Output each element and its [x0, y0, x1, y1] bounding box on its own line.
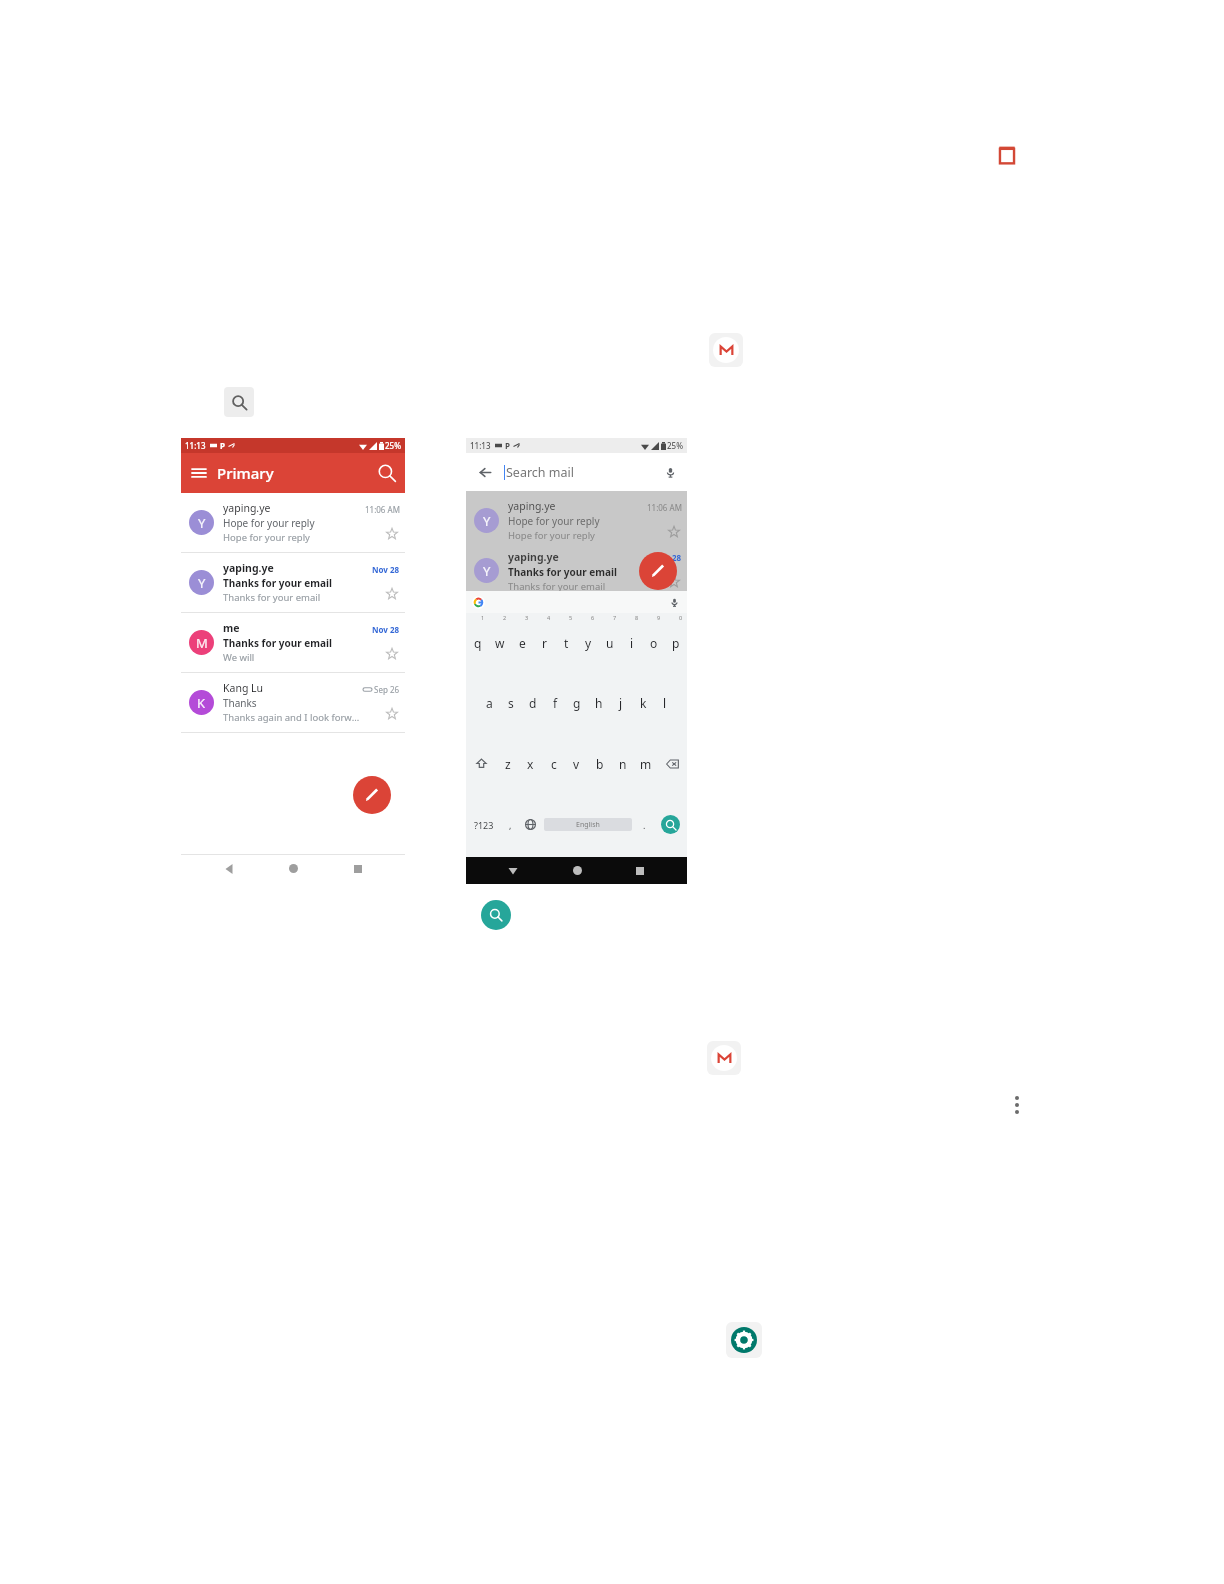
button[interactable]: c — [542, 733, 565, 794]
button[interactable]: Star — [384, 526, 400, 542]
button[interactable]: 4 — [533, 613, 555, 673]
staticText: d — [529, 695, 537, 711]
staticText: ?123 — [474, 819, 494, 831]
staticText: yaping.ye — [508, 550, 559, 564]
staticText: 9 — [657, 614, 661, 621]
button[interactable]: l — [654, 673, 676, 733]
button[interactable]: 5 — [555, 613, 577, 673]
button[interactable]: Y — [466, 550, 687, 591]
button[interactable]: z — [496, 733, 519, 794]
button[interactable]: Compose — [353, 776, 391, 814]
button[interactable]: Star — [384, 646, 400, 662]
button[interactable]: K — [181, 673, 405, 733]
staticText: 11:06 AM — [365, 504, 400, 515]
button[interactable]: Voice input — [667, 595, 681, 609]
button[interactable]: b — [588, 733, 611, 794]
button[interactable]: Back — [496, 857, 530, 884]
button[interactable]: 3 — [511, 613, 533, 673]
button[interactable]: Star — [666, 574, 682, 590]
button[interactable]: Search — [661, 815, 680, 834]
staticText: yaping.ye — [223, 561, 274, 575]
button[interactable]: Change language — [520, 794, 541, 855]
button[interactable]: M — [181, 613, 405, 673]
staticText: 8 — [635, 614, 639, 621]
button[interactable]: v — [565, 733, 588, 794]
staticText: Hope for your reply — [508, 514, 600, 528]
button[interactable]: Star — [666, 524, 682, 540]
button[interactable]: k — [632, 673, 654, 733]
button[interactable]: English — [544, 818, 632, 831]
staticText: Nov 28 — [372, 564, 400, 575]
button[interactable]: Home — [560, 857, 594, 884]
staticText: 5 — [569, 614, 573, 621]
staticText: n — [619, 756, 627, 772]
staticText: Search mail — [506, 464, 574, 481]
button[interactable]: Home — [276, 855, 310, 882]
button[interactable]: d — [522, 673, 544, 733]
button[interactable]: Backspace — [657, 733, 687, 794]
button[interactable]: a — [478, 673, 500, 733]
button[interactable]: Y — [466, 491, 687, 550]
staticText: 1 — [481, 614, 485, 621]
staticText: s — [508, 695, 514, 711]
staticText: P — [505, 440, 510, 451]
button[interactable]: f — [544, 673, 566, 733]
button[interactable]: , — [501, 794, 520, 855]
button[interactable]: ?123 — [466, 794, 501, 855]
button[interactable]: Recents — [623, 857, 657, 884]
button[interactable]: Open navigation drawer — [181, 453, 217, 493]
staticText: Hope for your reply — [223, 531, 310, 544]
button[interactable]: m — [634, 733, 657, 794]
staticText: Y — [483, 512, 491, 530]
staticText: yaping.ye — [508, 499, 556, 513]
button[interactable]: Google — [472, 596, 485, 609]
button[interactable]: Recents — [341, 855, 375, 882]
button[interactable]: Y — [181, 493, 405, 553]
staticText: a — [486, 695, 493, 711]
button[interactable]: . — [635, 794, 654, 855]
staticText: Thanks for your email — [223, 591, 321, 604]
button[interactable]: Shift — [466, 733, 496, 794]
button[interactable]: g — [566, 673, 588, 733]
staticText: M — [196, 634, 208, 652]
button[interactable]: Voice search — [653, 453, 687, 491]
button[interactable]: 7 — [599, 613, 621, 673]
button[interactable]: Gmail — [707, 1041, 741, 1075]
button[interactable]: 6 — [577, 613, 599, 673]
button[interactable]: 1 — [466, 613, 489, 673]
button[interactable]: j — [610, 673, 632, 733]
staticText: Y — [198, 574, 206, 592]
button[interactable]: x — [519, 733, 542, 794]
button[interactable]: Compose — [639, 552, 677, 590]
button[interactable]: Star — [384, 706, 400, 722]
button[interactable]: 2 — [489, 613, 511, 673]
staticText: i — [630, 635, 634, 651]
button[interactable]: Back — [466, 453, 504, 491]
button[interactable]: Delete — [992, 140, 1022, 170]
staticText: u — [606, 635, 614, 651]
button[interactable]: Search — [224, 387, 254, 417]
button[interactable]: Search — [369, 453, 405, 493]
staticText: , — [509, 819, 512, 831]
button[interactable]: Search — [481, 900, 511, 930]
staticText: k — [640, 695, 647, 711]
button[interactable]: Gmail — [709, 333, 743, 367]
button[interactable]: More options — [1006, 1094, 1028, 1116]
button[interactable]: 8 — [621, 613, 643, 673]
staticText: e — [519, 635, 526, 651]
button[interactable]: h — [588, 673, 610, 733]
button[interactable]: n — [611, 733, 634, 794]
button[interactable]: Search mail — [504, 464, 653, 481]
button[interactable]: Y — [181, 553, 405, 613]
button[interactable]: Settings — [726, 1322, 762, 1358]
button[interactable]: 0 — [665, 613, 687, 673]
staticText: Y — [483, 562, 491, 580]
button[interactable]: Star — [384, 586, 400, 602]
staticText: g — [573, 695, 581, 711]
staticText: yaping.ye — [223, 501, 271, 515]
button[interactable]: s — [500, 673, 522, 733]
button[interactable]: 9 — [643, 613, 665, 673]
staticText: Thanks for your email — [508, 580, 606, 591]
staticText: p — [672, 635, 680, 651]
button[interactable]: Back — [212, 855, 246, 882]
